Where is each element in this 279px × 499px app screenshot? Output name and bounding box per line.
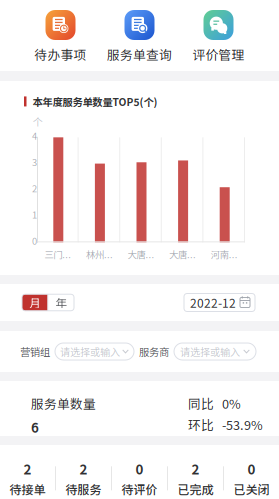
button[interactable]: 月 <box>22 294 47 311</box>
staticText: 三门... <box>44 247 71 261</box>
staticText: 请选择或输入 <box>180 344 240 359</box>
staticText: 待评价 <box>121 480 157 498</box>
staticText: 2022-12 <box>190 294 236 311</box>
staticText: 待接单 <box>9 480 45 498</box>
staticText: 0 <box>247 459 255 478</box>
staticText: 营销组 <box>20 344 50 359</box>
staticText: 0 <box>32 234 37 247</box>
staticText: 大唐... <box>169 247 196 261</box>
staticText: 已完成 <box>177 480 213 498</box>
staticText: 服务单查询 <box>107 45 172 63</box>
staticText: 河南... <box>211 247 238 261</box>
staticText: 同比 <box>188 394 214 412</box>
staticText: 年 <box>56 294 67 311</box>
staticText: 待办事项 <box>34 45 86 63</box>
staticText: -53.9% <box>222 415 263 434</box>
button[interactable]: 请选择或输入 <box>55 343 134 360</box>
staticText: 服务单数量 <box>31 394 96 412</box>
button[interactable]: 待办事项 <box>21 10 100 63</box>
staticText: 待服务 <box>65 480 101 498</box>
button[interactable]: 服务单查询 <box>100 10 179 63</box>
staticText: 服务商 <box>139 344 169 359</box>
button[interactable]: 0 <box>224 459 279 498</box>
button[interactable]: 2 <box>56 459 111 498</box>
staticText: 4 <box>32 129 37 142</box>
staticText: 已关闭 <box>233 480 269 498</box>
staticText: 月 <box>29 294 40 311</box>
button[interactable]: 年 <box>48 294 74 311</box>
button[interactable]: 2022-12 <box>184 293 255 311</box>
staticText: 3 <box>32 155 37 169</box>
staticText: 2 <box>191 459 199 478</box>
staticText: 个 <box>33 114 43 128</box>
button[interactable]: 请选择或输入 <box>174 343 256 360</box>
staticText: 2 <box>32 181 37 195</box>
staticText: 环比 <box>188 415 214 434</box>
staticText: 林州... <box>86 247 113 261</box>
button[interactable]: 评价管理 <box>179 10 258 63</box>
button[interactable]: 0 <box>112 459 167 498</box>
staticText: 2 <box>23 459 31 478</box>
staticText: 请选择或输入 <box>60 344 120 359</box>
staticText: 1 <box>32 208 37 221</box>
staticText: 评价管理 <box>192 45 244 63</box>
staticText: 0% <box>222 394 241 412</box>
staticText: 大唐... <box>127 247 154 261</box>
button[interactable]: 2 <box>0 459 55 498</box>
staticText: 6 <box>31 417 39 437</box>
staticText: 2 <box>79 459 87 478</box>
staticText: 本年度服务单数量TOP5(个) <box>32 94 157 109</box>
staticText: 0 <box>135 459 143 478</box>
button[interactable]: 2 <box>168 459 223 498</box>
